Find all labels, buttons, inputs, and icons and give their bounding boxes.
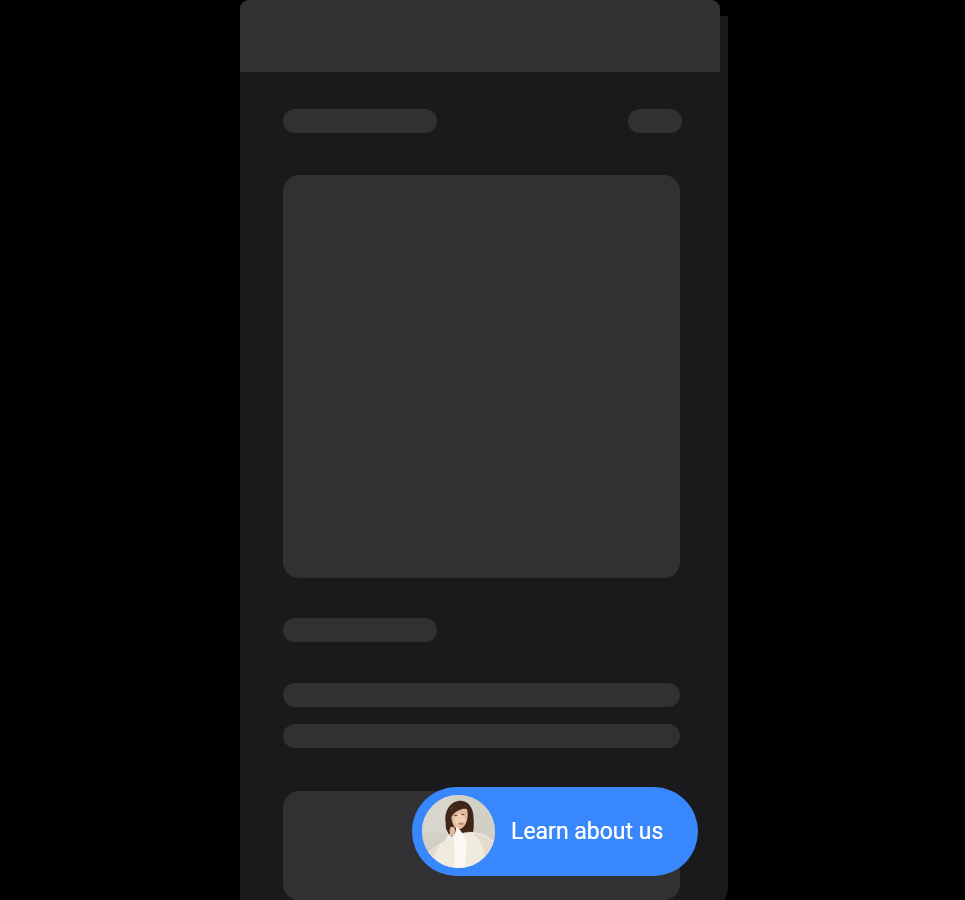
staticText: Learn about us <box>511 818 664 845</box>
button[interactable]: Learn about us <box>412 787 698 876</box>
button[interactable]: Loading content card <box>283 791 680 900</box>
